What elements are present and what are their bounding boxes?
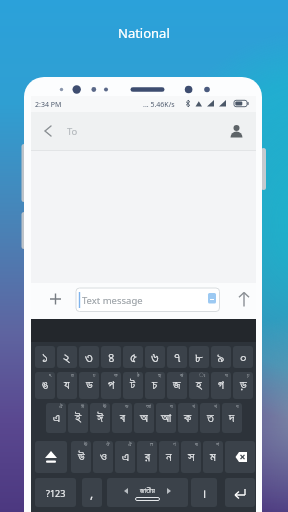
button[interactable]: ঝ <box>167 372 187 399</box>
button[interactable]: ঔ <box>93 441 113 473</box>
staticText: অ <box>140 412 148 425</box>
staticText: এ <box>53 412 60 425</box>
staticText: , <box>90 485 94 501</box>
staticText: ঊ <box>84 441 88 447</box>
staticText: ঔ <box>106 441 110 447</box>
button[interactable]: ৭ <box>167 346 187 368</box>
staticText: ... 5.46K/s <box>143 100 175 110</box>
staticText: এ <box>122 451 129 464</box>
button[interactable]: ঈ <box>68 403 88 433</box>
button[interactable]: ?123 <box>35 478 76 507</box>
button[interactable]: ল <box>137 441 157 473</box>
staticText: য <box>64 379 70 392</box>
button[interactable]: আ <box>134 403 154 433</box>
button[interactable]: ঢ <box>79 372 99 399</box>
staticText: র <box>145 451 150 464</box>
button[interactable]: ঘ <box>211 372 231 399</box>
staticText: ৭ <box>174 350 181 365</box>
button[interactable] <box>225 441 255 473</box>
staticText: হ <box>196 379 202 392</box>
staticText: ৫ <box>130 350 137 365</box>
staticText: জ <box>173 379 181 392</box>
button[interactable] <box>35 118 61 144</box>
staticText: উ <box>78 451 85 464</box>
staticText: দ <box>229 412 235 425</box>
button[interactable]: ২ <box>57 346 77 368</box>
staticText: আ <box>146 403 151 409</box>
button[interactable]: ঠ <box>123 372 143 399</box>
staticText: ই <box>75 412 82 425</box>
button[interactable]: ৎ <box>35 372 55 399</box>
button[interactable]: ৩ <box>79 346 99 368</box>
staticText: খ <box>192 403 195 409</box>
staticText: ষ <box>195 441 198 447</box>
staticText: শ <box>216 441 220 447</box>
button[interactable]: ষ <box>181 441 201 473</box>
button[interactable]: ঐ <box>115 441 135 473</box>
staticText: ৎ <box>49 372 52 378</box>
button[interactable]: থ <box>200 403 220 433</box>
button[interactable]: । <box>191 478 217 507</box>
button[interactable]: ভ <box>112 403 132 433</box>
button[interactable]: ঐ <box>46 403 66 433</box>
staticText: ০ <box>240 350 247 365</box>
button[interactable]: য় <box>57 372 77 399</box>
button[interactable]: শ <box>203 441 223 473</box>
staticText: ঘ <box>225 372 228 378</box>
button[interactable]: য <box>156 403 176 433</box>
button[interactable]: ণ <box>159 441 179 473</box>
button[interactable] <box>41 285 71 315</box>
button[interactable]: ৮ <box>189 346 209 368</box>
button[interactable] <box>225 478 255 507</box>
staticText: 2:34 PM <box>35 100 62 110</box>
button[interactable]: ৯ <box>211 346 231 368</box>
button[interactable] <box>225 118 251 144</box>
button[interactable] <box>229 285 259 315</box>
button[interactable]: ১ <box>35 346 55 368</box>
staticText: ঢ <box>93 372 96 378</box>
button[interactable]: ৪ <box>101 346 121 368</box>
button[interactable] <box>76 288 219 312</box>
button[interactable]: ঊ <box>71 441 91 473</box>
staticText: ক <box>184 412 192 425</box>
staticText: প <box>108 379 115 392</box>
staticText: য় <box>71 372 74 378</box>
staticText: স <box>188 451 195 464</box>
staticText: ড <box>86 379 93 392</box>
staticText: জাতীয় <box>140 487 155 495</box>
staticText: ঐ <box>59 403 63 409</box>
button[interactable]: ০ <box>233 346 253 368</box>
staticText: ঈ <box>97 412 104 425</box>
staticText: গ <box>218 379 224 392</box>
button[interactable]: খ <box>178 403 198 433</box>
button[interactable]: ঃ <box>189 372 209 399</box>
button[interactable]: ঊ <box>90 403 110 433</box>
button[interactable]: ৫ <box>123 346 143 368</box>
staticText: ন <box>166 451 172 464</box>
staticText: চ <box>152 379 158 392</box>
button[interactable]: ফ <box>101 372 121 399</box>
staticText: ফ <box>114 372 118 378</box>
button[interactable] <box>35 441 67 473</box>
button[interactable]: ধ <box>222 403 242 433</box>
button[interactable]: , <box>82 478 102 507</box>
staticText: ঊ <box>103 403 107 409</box>
button[interactable]: ঢ় <box>233 372 253 399</box>
staticText: ৯ <box>217 350 225 365</box>
staticText: Text message <box>82 294 143 307</box>
button[interactable]: ছ <box>145 372 165 399</box>
staticText: ধ <box>236 403 239 409</box>
staticText: ল <box>150 441 154 447</box>
staticText: থ <box>214 403 217 409</box>
staticText: ঈ <box>81 403 85 409</box>
staticText: ণ <box>173 441 176 447</box>
staticText: ও <box>100 451 107 464</box>
button[interactable]: ৬ <box>145 346 165 368</box>
staticText: ঃ <box>199 372 206 378</box>
staticText: ত <box>207 412 214 425</box>
staticText: ?123 <box>46 487 66 499</box>
button[interactable]: জাতীয় <box>107 478 188 507</box>
staticText: । <box>202 485 207 501</box>
staticText: ঠ <box>137 372 140 378</box>
staticText: ৪ <box>108 350 115 365</box>
